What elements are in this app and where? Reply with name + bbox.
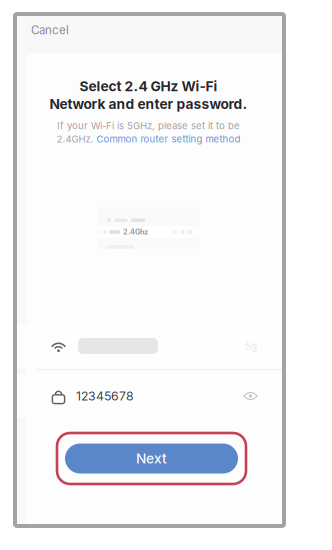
staticText: Network and enter password. [49,96,247,112]
staticText: If your Wi-Fi is 5GHz, please set it to … [57,120,240,131]
staticText: 2.4Ghz [123,228,148,236]
button[interactable]: Cancel [31,20,75,40]
staticText: Next [136,450,167,467]
staticText: Common router setting method [96,133,240,145]
button[interactable]: Show password [243,390,258,402]
staticText: 5g [245,340,257,352]
staticText: 12345678 [76,389,134,403]
button[interactable]: Common router setting method [96,133,240,145]
staticText: Cancel [31,23,69,37]
button[interactable]: Next [65,443,238,473]
staticText: 2.4GHz. [56,133,93,145]
staticText: Select 2.4 GHz Wi-Fi [79,78,217,94]
